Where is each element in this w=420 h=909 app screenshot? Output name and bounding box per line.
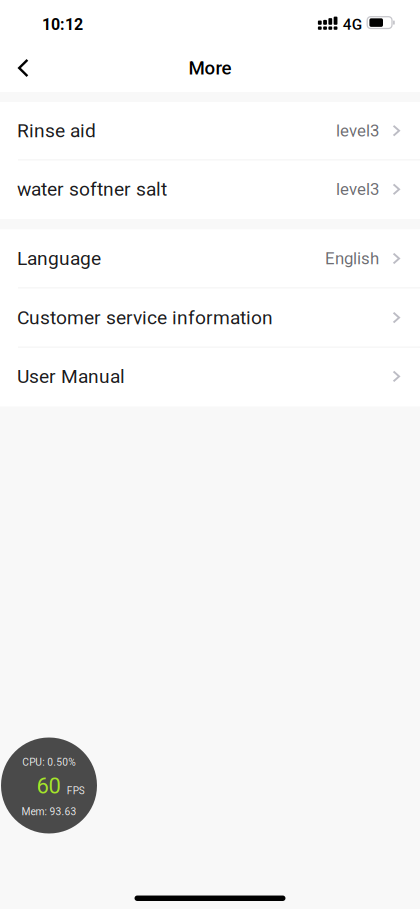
button[interactable]: User Manual xyxy=(0,348,420,406)
staticText: More xyxy=(188,57,231,79)
staticText: 4G xyxy=(343,15,362,33)
button[interactable]: Language xyxy=(0,230,420,289)
staticText: English xyxy=(325,249,379,268)
staticText: level3 xyxy=(336,121,379,141)
staticText: CPU: 0.50% xyxy=(22,756,76,768)
staticText: Mem: 93.63 xyxy=(22,806,77,818)
staticText: FPS xyxy=(67,785,85,797)
staticText: level3 xyxy=(336,179,379,199)
button[interactable]: Rinse aid xyxy=(0,102,420,161)
button[interactable]: Customer service information xyxy=(0,289,420,348)
staticText: User Manual xyxy=(17,365,125,388)
staticText: Customer service information xyxy=(17,306,273,329)
staticText: 10:12 xyxy=(42,15,83,34)
staticText: 60 xyxy=(36,773,60,799)
staticText: water softner salt xyxy=(17,178,167,200)
button[interactable]: Back xyxy=(0,44,47,92)
button[interactable]: water softner salt xyxy=(0,161,420,219)
staticText: Language xyxy=(17,247,101,270)
staticText: Rinse aid xyxy=(17,119,96,142)
